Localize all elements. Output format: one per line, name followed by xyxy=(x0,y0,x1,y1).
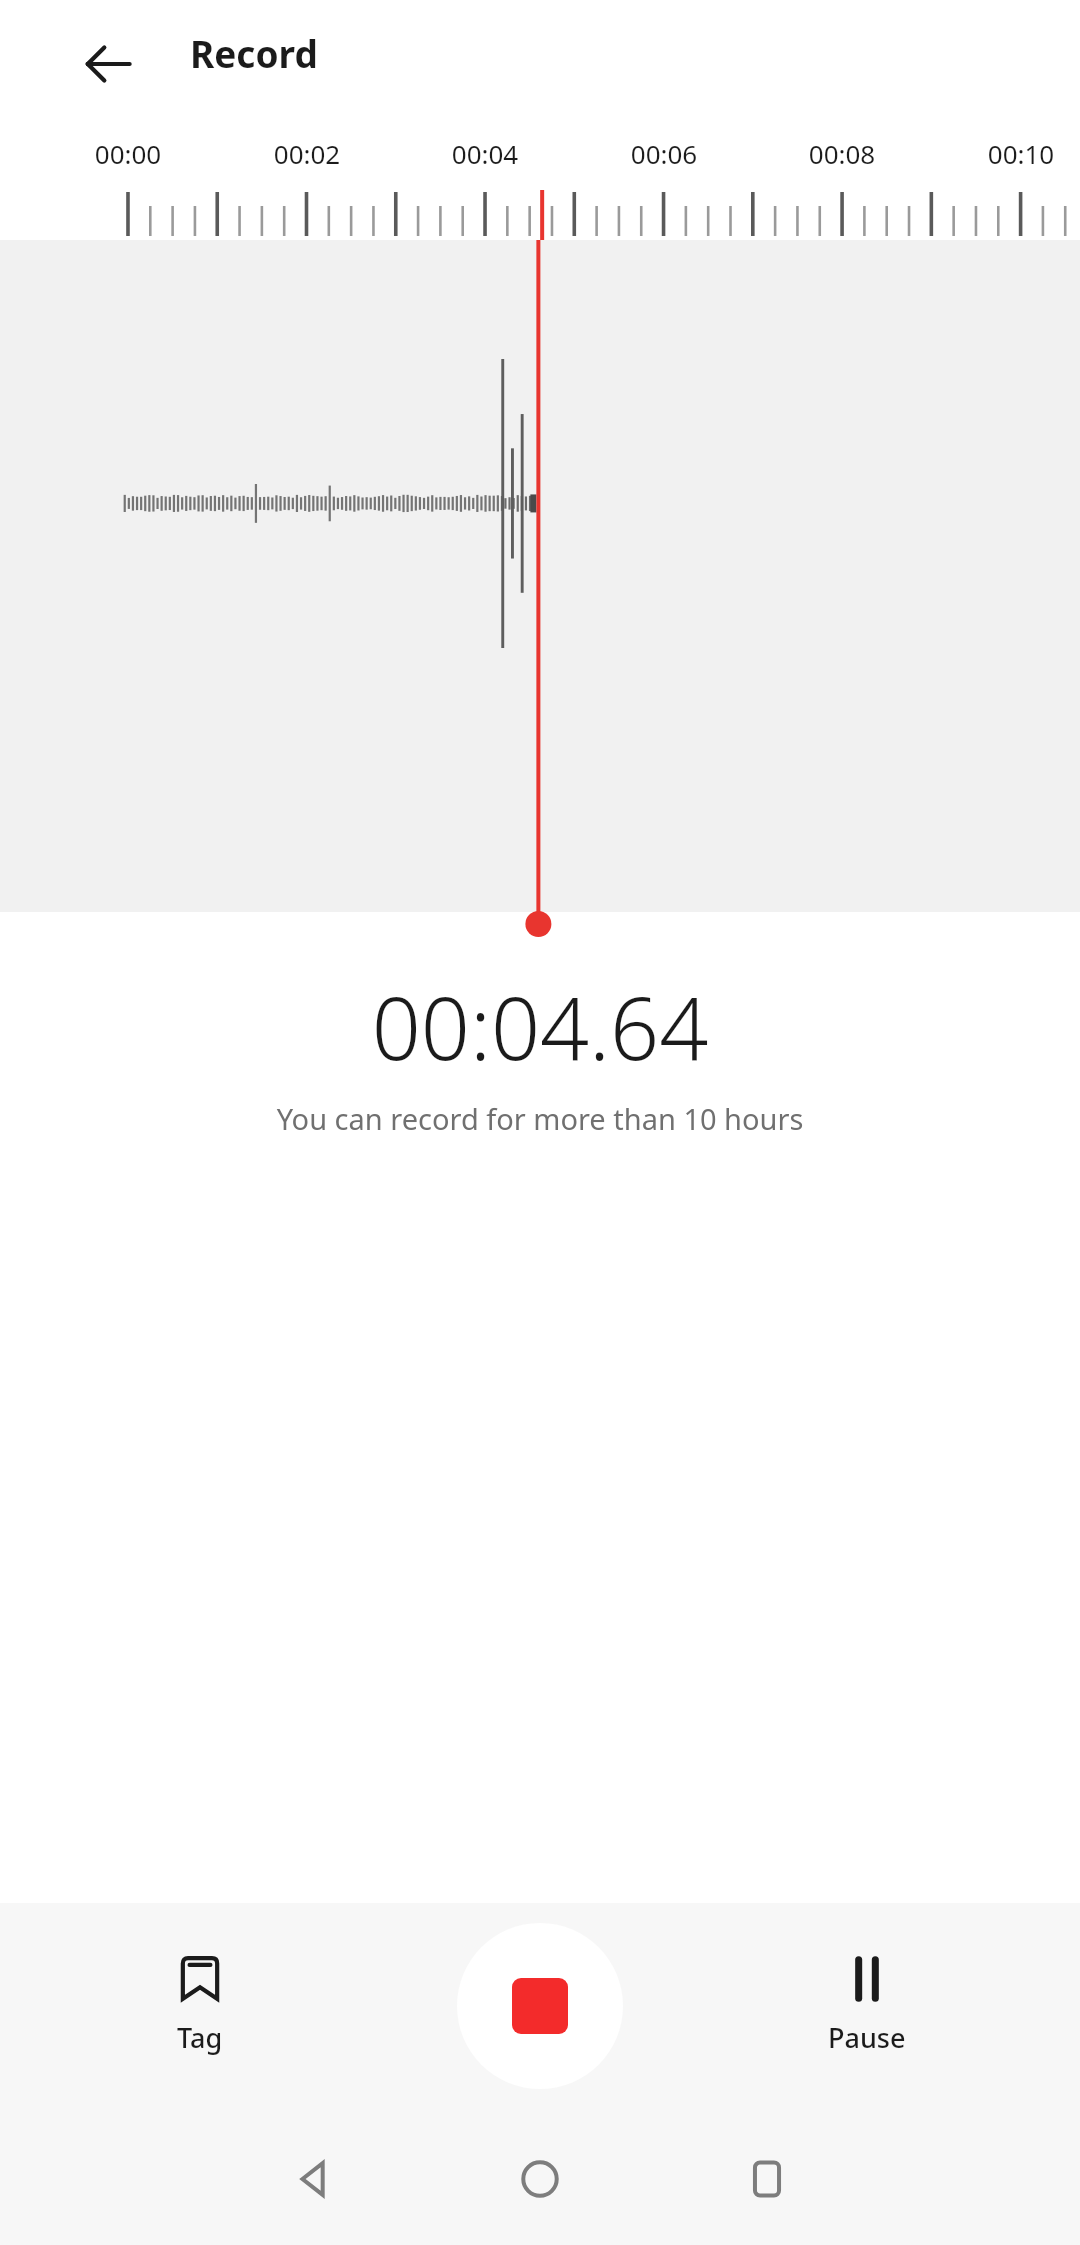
staticText: Tag xyxy=(177,2019,223,2056)
staticText: 00:06 xyxy=(616,136,712,171)
staticText: Pause xyxy=(828,2019,906,2056)
button[interactable]: Back xyxy=(68,24,148,104)
staticText: You can record for more than 10 hours xyxy=(0,1099,1080,1138)
staticText: 00:02 xyxy=(259,136,355,171)
staticText: 00:10 xyxy=(973,136,1069,171)
button[interactable]: Pause xyxy=(804,1943,930,2066)
button[interactable]: Tag xyxy=(150,1943,250,2066)
button[interactable]: Stop recording xyxy=(457,1923,623,2089)
button[interactable]: Back xyxy=(265,2131,361,2227)
staticText: 00:04 xyxy=(437,136,533,171)
staticText: 00:08 xyxy=(794,136,890,171)
button[interactable]: Home xyxy=(492,2131,588,2227)
staticText: 00:04.64 xyxy=(0,968,1080,1085)
button[interactable]: Recent apps xyxy=(719,2131,815,2227)
staticText: Record xyxy=(190,28,318,78)
staticText: 00:00 xyxy=(80,136,176,171)
